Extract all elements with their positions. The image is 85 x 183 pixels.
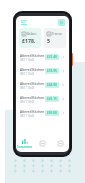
staticText: Altered Kitchen Cookbook: [20, 81, 45, 85]
staticText: Altered Kitchen Cookbook: [20, 67, 45, 71]
button[interactable]: Menu: [20, 18, 28, 26]
button[interactable]: Balance: [19, 28, 41, 48]
staticText: Altered Kitchen Cookbook: [20, 109, 45, 113]
staticText: 08/11 10:42: [20, 72, 35, 76]
staticText: 08/11 10:42: [20, 114, 35, 118]
staticText: Altered Kitchen Cookbook: [20, 53, 45, 57]
staticText: £59.00: [47, 111, 57, 115]
staticText: £18.95: [47, 69, 57, 73]
button[interactable]: Transactions: [44, 28, 66, 48]
staticText: 08/11 10:42: [20, 86, 35, 90]
button[interactable]: Altered Kitchen Cookbook: [19, 106, 66, 120]
button[interactable]: Settings: [51, 134, 69, 152]
staticText: £178.50: [22, 37, 38, 44]
staticText: Transactions: [17, 145, 33, 148]
staticText: 08/11 10:42: [20, 100, 35, 104]
button[interactable]: Altered Kitchen Cookbook: [19, 50, 66, 64]
button[interactable]: Cards: [33, 134, 51, 152]
staticText: 08/11 10:42: [20, 58, 35, 62]
button[interactable]: Altered Kitchen Cookbook: [19, 78, 66, 92]
staticText: 5: [47, 37, 50, 44]
staticText: £31.40: [47, 55, 57, 59]
staticText: Altered Kitchen Cookbook: [20, 95, 45, 99]
staticText: £44.00: [47, 83, 57, 87]
staticText: £25.15: [47, 97, 57, 101]
button[interactable]: Transactions: [16, 134, 33, 152]
staticText: Transactions: [52, 32, 63, 36]
button[interactable]: Altered Kitchen Cookbook: [19, 64, 66, 78]
button[interactable]: Wallet: [58, 19, 65, 26]
button[interactable]: Altered Kitchen Cookbook: [19, 92, 66, 106]
staticText: Balance: [27, 32, 38, 36]
